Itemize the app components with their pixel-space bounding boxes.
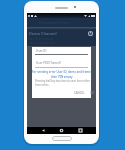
staticText: User ID: [36, 49, 47, 53]
staticText: For sending error User ID, demo and fram…: [32, 70, 91, 74]
staticText: CANCEL: [74, 91, 85, 95]
button[interactable]: CANCEL: [73, 90, 86, 96]
staticText: from other...: [35, 83, 50, 87]
button[interactable]: Back: [41, 128, 46, 133]
staticText: Demo Channel: [29, 31, 57, 36]
button[interactable]: Recents: [78, 128, 83, 133]
button[interactable]: Home: [59, 128, 64, 133]
staticText: Pressing ball key two time to save from …: [35, 79, 91, 83]
staticText: User PIN (Tunnel): [36, 61, 61, 65]
button[interactable]: Connect: [88, 31, 93, 36]
staticText: their PIN empty: [51, 75, 73, 79]
button[interactable]: OK: [89, 90, 95, 96]
staticText: OK: [90, 91, 94, 95]
staticText: Password Entry: [39, 20, 70, 26]
